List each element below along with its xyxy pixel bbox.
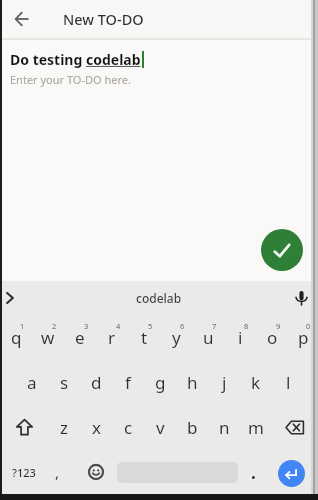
button[interactable] (261, 229, 303, 271)
staticText: New TO-DO (63, 9, 144, 29)
button[interactable]: ?123 (4, 450, 44, 494)
staticText: 9 (276, 321, 281, 331)
button[interactable]: p (288, 315, 318, 360)
staticText: u (203, 326, 214, 349)
staticText: h (187, 371, 198, 394)
staticText: n (219, 416, 230, 439)
button[interactable]: o (256, 315, 288, 360)
staticText: o (267, 326, 278, 349)
staticText: 5 (148, 321, 153, 331)
button[interactable] (0, 0, 44, 38)
staticText: , (55, 462, 60, 482)
button[interactable]: z (48, 405, 80, 450)
staticText: e (75, 326, 85, 349)
staticText: b (187, 416, 198, 439)
staticText: codelab (136, 290, 182, 306)
button[interactable]: j (208, 360, 240, 405)
button[interactable]: d (80, 360, 112, 405)
button[interactable]: s (48, 360, 80, 405)
staticText: x (92, 416, 101, 439)
staticText: Enter your TO-DO here. (10, 72, 131, 87)
staticText: j (222, 371, 227, 394)
button[interactable] (0, 405, 48, 450)
staticText: k (251, 371, 261, 394)
staticText: p (298, 326, 309, 349)
button[interactable]: . (244, 450, 262, 494)
button[interactable]: y (160, 315, 192, 360)
button[interactable]: h (176, 360, 208, 405)
staticText: 7 (212, 321, 217, 331)
staticText: i (238, 326, 243, 349)
button[interactable]: n (208, 405, 240, 450)
staticText: 0 (306, 321, 311, 331)
staticText: 2 (52, 321, 57, 331)
button[interactable]: x (80, 405, 112, 450)
button[interactable] (84, 450, 108, 494)
staticText: v (156, 416, 165, 439)
staticText: s (60, 371, 69, 394)
button[interactable] (272, 405, 318, 450)
button[interactable]: b (176, 405, 208, 450)
button[interactable]: l (272, 360, 304, 405)
staticText: f (125, 371, 131, 394)
staticText: Do testing codelab (10, 50, 141, 69)
staticText: q (11, 326, 22, 349)
staticText: 3 (84, 321, 89, 331)
button[interactable]: t (128, 315, 160, 360)
button[interactable]: c (112, 405, 144, 450)
staticText: r (108, 326, 116, 349)
button[interactable] (0, 281, 20, 315)
staticText: m (248, 416, 264, 439)
button[interactable]: q (0, 315, 32, 360)
button[interactable]: , (47, 450, 67, 494)
button[interactable]: v (144, 405, 176, 450)
staticText: l (286, 371, 291, 394)
staticText: t (141, 326, 148, 349)
staticText: w (41, 326, 55, 349)
button[interactable] (278, 460, 305, 487)
button[interactable]: i (224, 315, 256, 360)
staticText: 4 (116, 321, 121, 331)
button[interactable]: u (192, 315, 224, 360)
staticText: 6 (180, 321, 185, 331)
staticText: c (124, 416, 133, 439)
button[interactable]: f (112, 360, 144, 405)
button[interactable]: k (240, 360, 272, 405)
button[interactable]: a (16, 360, 48, 405)
staticText: d (91, 371, 102, 394)
button[interactable] (290, 281, 312, 315)
button[interactable]: g (144, 360, 176, 405)
button[interactable]: w (32, 315, 64, 360)
staticText: 8 (244, 321, 249, 331)
button[interactable]: r (96, 315, 128, 360)
button[interactable]: m (240, 405, 272, 450)
staticText: y (172, 326, 181, 349)
staticText: z (60, 416, 68, 439)
staticText: g (155, 371, 166, 394)
staticText: . (251, 461, 256, 484)
staticText: ?123 (12, 465, 36, 480)
button[interactable]: e (64, 315, 96, 360)
staticText: 1 (20, 321, 25, 331)
staticText: a (27, 371, 37, 394)
